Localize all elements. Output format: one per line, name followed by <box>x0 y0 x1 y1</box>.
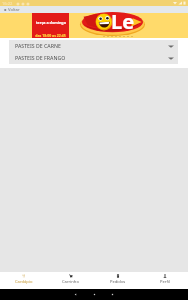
other: Back <box>74 293 77 296</box>
button[interactable]: Pedidos <box>94 272 141 289</box>
staticText: Carrinho <box>62 279 79 285</box>
staticText: 16:22 <box>2 1 13 6</box>
button[interactable]: Perfil <box>141 272 188 289</box>
staticText: Voltar <box>8 7 20 13</box>
button[interactable]: PASTEIS DE FRANGO <box>9 52 178 64</box>
button[interactable]: Cardápio <box>0 272 47 289</box>
staticText: Cardápio <box>15 279 33 285</box>
button[interactable]: PASTEIS DE CARNE <box>9 40 178 52</box>
staticText: PASTEIS DE FRANGO <box>15 54 66 61</box>
other: Home <box>93 293 96 296</box>
button[interactable]: Voltar <box>0 6 23 13</box>
staticText: Perfil <box>160 279 170 285</box>
staticText: terça a domingo <box>36 20 66 25</box>
button[interactable]: Carrinho <box>47 272 94 289</box>
staticText: Pedidos <box>110 279 126 285</box>
staticText: Le <box>111 8 135 32</box>
other: Voltar <box>3 8 7 12</box>
other: Recents <box>111 293 114 296</box>
staticText: PASTEIS DE CARNE <box>15 42 61 49</box>
staticText: das 18:00 as 22:45 <box>35 33 66 38</box>
